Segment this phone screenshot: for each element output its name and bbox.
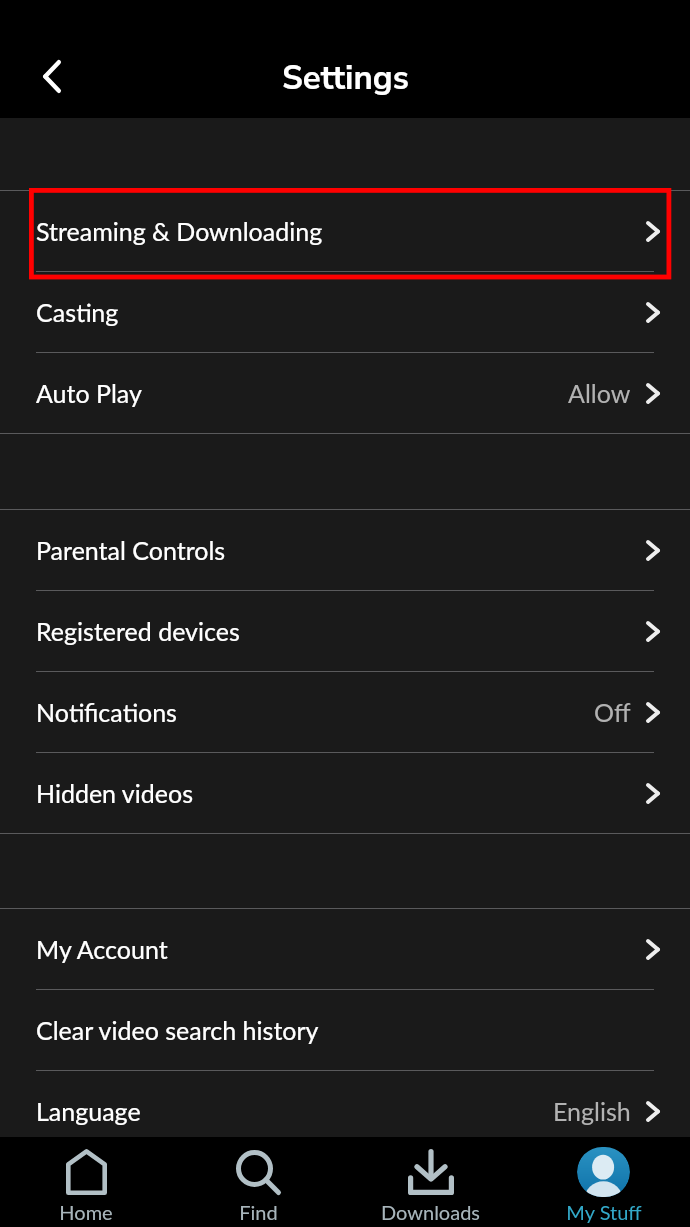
- staticText: Streaming & Downloading: [36, 216, 323, 246]
- button[interactable]: Hidden videos: [0, 753, 690, 833]
- staticText: Casting: [36, 297, 119, 327]
- button[interactable]: Home: [0, 1137, 172, 1227]
- staticText: Off: [594, 697, 631, 727]
- staticText: Language: [36, 1096, 141, 1126]
- button[interactable]: Find: [172, 1137, 344, 1227]
- button[interactable]: My Stuff: [517, 1137, 690, 1227]
- button[interactable]: Back: [24, 48, 80, 104]
- staticText: Home: [59, 1200, 113, 1224]
- staticText: Hidden videos: [36, 778, 193, 808]
- staticText: Clear video search history: [36, 1015, 319, 1045]
- staticText: Settings: [282, 56, 409, 101]
- staticText: My Account: [36, 934, 168, 964]
- staticText: Notifications: [36, 697, 177, 727]
- button[interactable]: Parental Controls: [0, 510, 690, 590]
- button[interactable]: Casting: [0, 272, 690, 352]
- button[interactable]: Registered devices: [0, 591, 690, 671]
- button[interactable]: Downloads: [344, 1137, 517, 1227]
- staticText: My Stuff: [566, 1200, 642, 1224]
- button[interactable]: Streaming & Downloading: [0, 191, 690, 271]
- button[interactable]: Language: [0, 1071, 690, 1151]
- staticText: Auto Play: [36, 378, 142, 408]
- button[interactable]: My Account: [0, 909, 690, 989]
- staticText: Allow: [568, 378, 631, 408]
- staticText: Find: [239, 1200, 278, 1224]
- button[interactable]: Clear video search history: [0, 990, 690, 1070]
- staticText: English: [553, 1096, 631, 1126]
- button[interactable]: Notifications: [0, 672, 690, 752]
- staticText: Parental Controls: [36, 535, 226, 565]
- staticText: Downloads: [381, 1200, 480, 1224]
- button[interactable]: Auto Play: [0, 353, 690, 433]
- staticText: Registered devices: [36, 616, 240, 646]
